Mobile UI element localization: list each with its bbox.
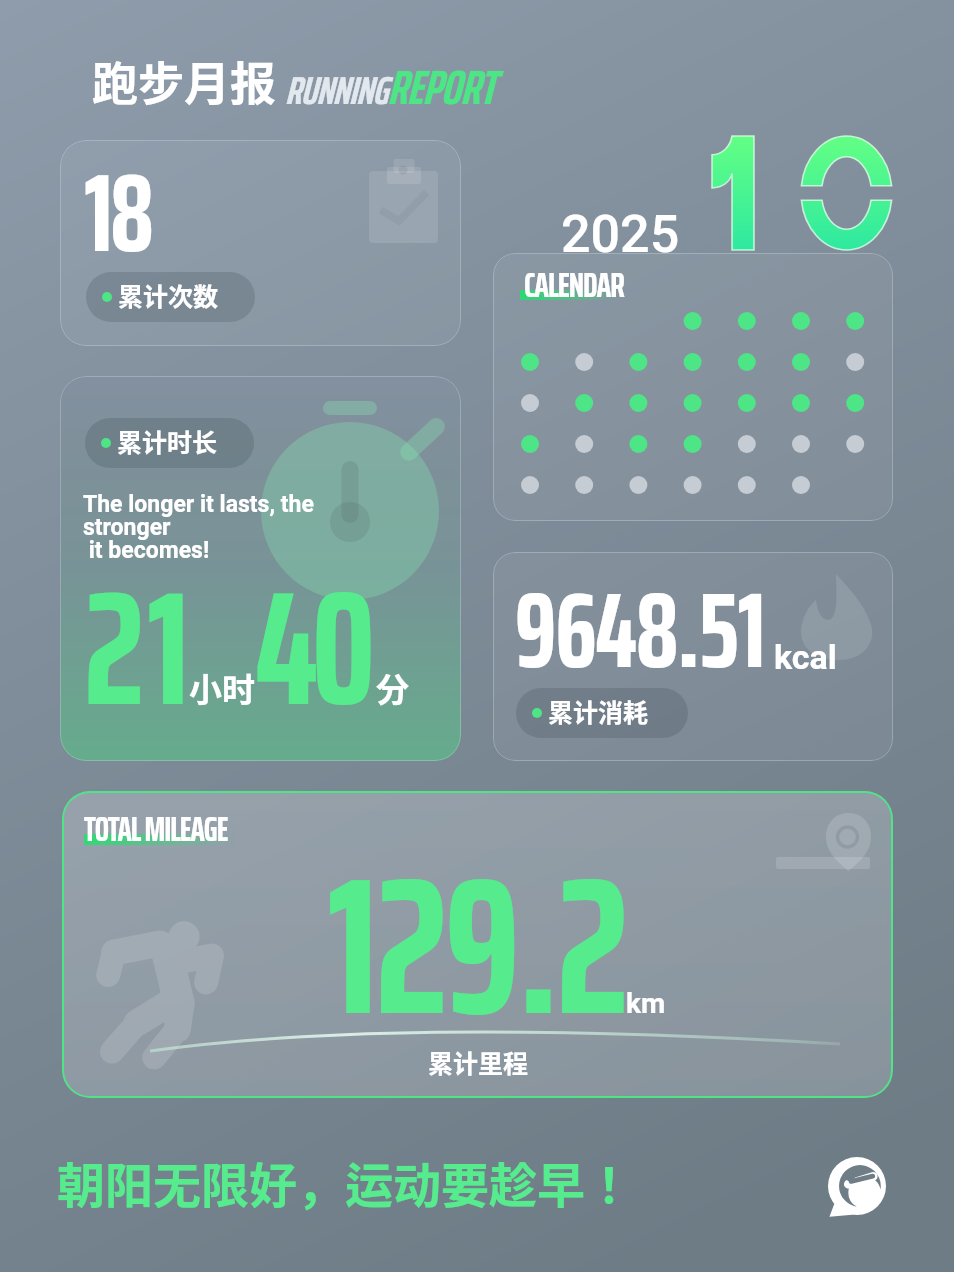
- staticText: 朝阳无限好，运动要趁早！: [57, 1147, 634, 1217]
- button[interactable]: [516, 688, 688, 738]
- button[interactable]: [62, 791, 893, 1098]
- staticText: 40: [255, 522, 370, 774]
- staticText: 累计次数: [118, 277, 219, 313]
- button[interactable]: [60, 140, 461, 346]
- staticText: RUNNINGREPORT: [285, 50, 495, 126]
- staticText: 累计时长: [117, 423, 218, 459]
- staticText: kcal: [774, 637, 837, 677]
- staticText: 2025: [561, 204, 680, 265]
- button[interactable]: [86, 272, 255, 322]
- staticText: CALENDAR: [524, 257, 624, 312]
- staticText: stronger: [83, 514, 171, 541]
- staticText: km: [626, 987, 666, 1020]
- staticText: 累计消耗: [548, 693, 649, 729]
- staticText: 跑步月报: [92, 47, 276, 114]
- staticText: 分: [376, 664, 409, 712]
- button[interactable]: [85, 418, 254, 468]
- staticText: TOTAL MILEAGE: [84, 802, 228, 856]
- button[interactable]: [60, 376, 461, 761]
- button[interactable]: App logo: [828, 1157, 886, 1215]
- staticText: 21: [84, 522, 193, 774]
- staticText: 129.2: [327, 795, 627, 1097]
- staticText: it becomes!: [83, 537, 210, 564]
- button[interactable]: [493, 253, 893, 521]
- staticText: 小时: [189, 664, 255, 712]
- staticText: The longer it lasts, the: [83, 491, 314, 518]
- button[interactable]: [493, 552, 893, 761]
- staticText: 累计里程: [428, 1044, 529, 1080]
- staticText: 9648.51: [515, 547, 765, 714]
- staticText: 18: [84, 127, 152, 299]
